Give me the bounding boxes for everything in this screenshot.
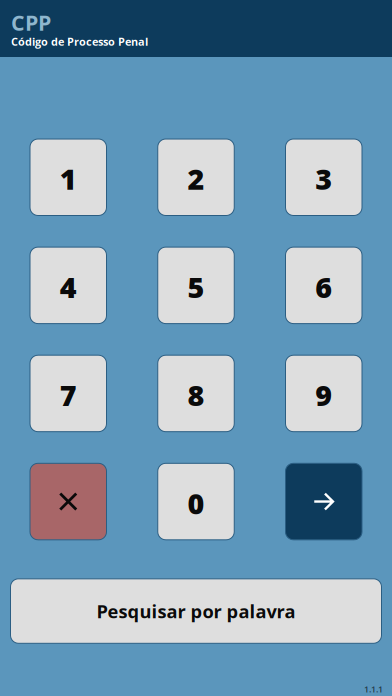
staticText: CPP xyxy=(11,8,51,37)
staticText: 5 xyxy=(187,267,204,306)
staticText: 7 xyxy=(60,375,77,414)
button[interactable]: 9 xyxy=(285,355,362,432)
button[interactable]: 6 xyxy=(285,247,362,324)
staticText: Código de Processo Penal xyxy=(11,34,148,49)
button[interactable]: 3 xyxy=(285,139,362,215)
staticText: 9 xyxy=(315,375,332,414)
button[interactable]: Pesquisar por palavra xyxy=(10,579,381,643)
staticText: 8 xyxy=(187,375,204,414)
button[interactable]: 1 xyxy=(30,139,106,215)
button[interactable]: 2 xyxy=(158,139,234,215)
staticText: Pesquisar por palavra xyxy=(96,599,295,623)
staticText: 2 xyxy=(187,159,204,198)
staticText: 3 xyxy=(315,159,332,198)
staticText: 0 xyxy=(187,483,204,522)
button[interactable]: 4 xyxy=(30,247,106,324)
button[interactable]: 7 xyxy=(30,355,106,432)
button[interactable]: Apagar xyxy=(30,463,106,540)
button[interactable]: 5 xyxy=(158,247,234,324)
button[interactable]: 8 xyxy=(158,355,234,432)
staticText: 4 xyxy=(60,267,77,306)
button[interactable]: 0 xyxy=(158,463,234,540)
staticText: 1.1.1 xyxy=(364,683,383,695)
staticText: 6 xyxy=(315,267,332,306)
button[interactable]: Procurar xyxy=(285,463,362,540)
staticText: 1 xyxy=(60,159,77,198)
